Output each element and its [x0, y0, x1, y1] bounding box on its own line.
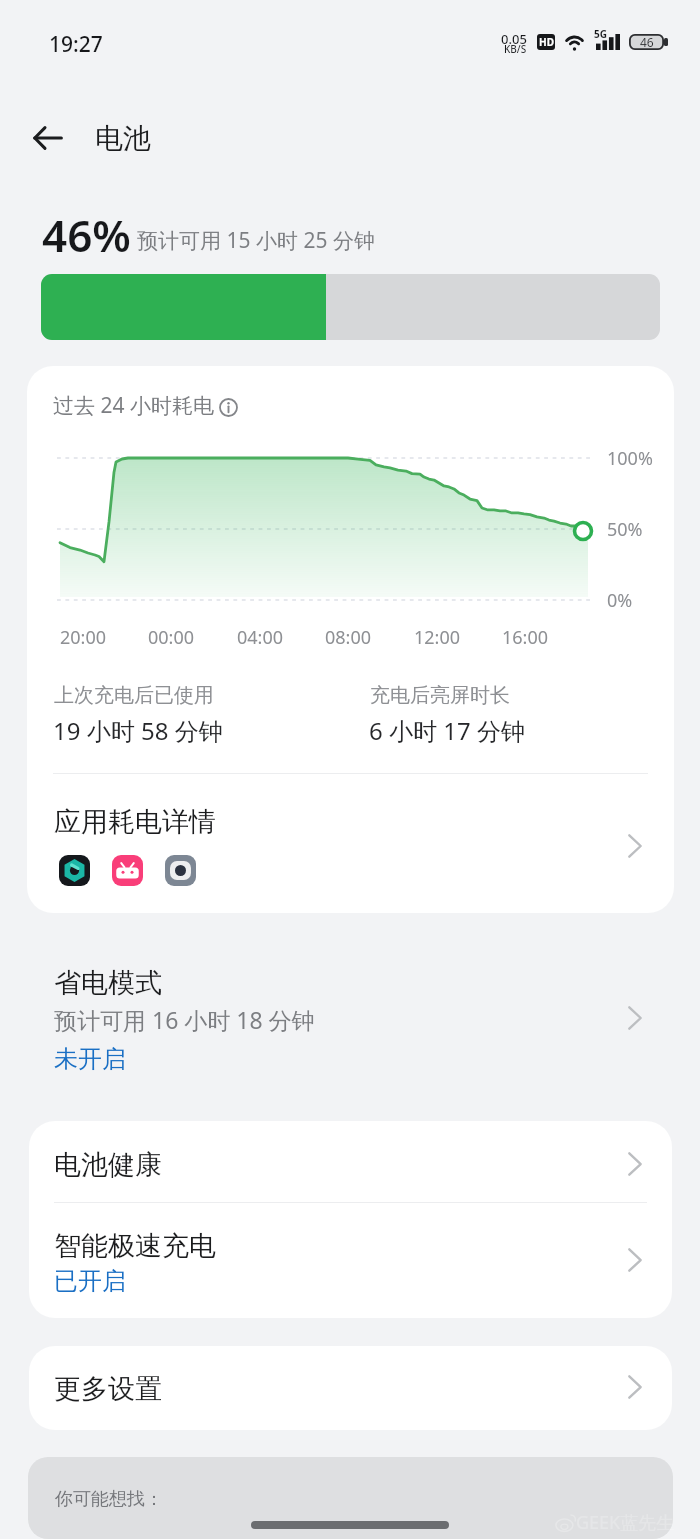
staticText: 20:00	[60, 625, 107, 650]
staticText: GEEK蓝先生	[576, 1510, 675, 1535]
staticText: 更多设置	[54, 1372, 162, 1406]
button[interactable]: Back	[16, 106, 80, 170]
staticText: 46	[640, 34, 654, 50]
staticText: 充电后亮屏时长	[370, 683, 510, 708]
button[interactable]: 应用耗电详情	[27, 774, 674, 913]
staticText: 16:00	[502, 625, 549, 650]
staticText: 省电模式	[54, 966, 162, 1000]
staticText: 电池	[95, 121, 151, 156]
staticText: 5G	[594, 27, 607, 41]
button[interactable]: 省电模式	[27, 940, 674, 1100]
staticText: 19:27	[49, 30, 103, 59]
staticText: 04:00	[237, 625, 284, 650]
button[interactable]: 智能极速充电	[29, 1203, 672, 1318]
staticText: 电池健康	[54, 1148, 162, 1182]
staticText: 0%	[607, 588, 633, 613]
staticText: 预计可用 16 小时 18 分钟	[54, 1004, 315, 1035]
staticText: 0.05	[501, 30, 527, 48]
staticText: HD	[539, 35, 554, 49]
staticText: 你可能想找：	[55, 1488, 163, 1511]
staticText: 08:00	[325, 625, 372, 650]
staticText: 已开启	[54, 1266, 126, 1296]
button[interactable]: 更多设置	[29, 1346, 672, 1430]
button[interactable]: 电池健康	[29, 1121, 672, 1202]
staticText: 6 小时 17 分钟	[369, 714, 525, 747]
staticText: 预计可用 15 小时 25 分钟	[137, 226, 375, 255]
staticText: 12:00	[414, 625, 461, 650]
staticText: 100%	[607, 446, 653, 471]
staticText: 50%	[607, 517, 643, 542]
staticText: 智能极速充电	[54, 1229, 216, 1263]
staticText: 应用耗电详情	[54, 805, 216, 839]
staticText: 过去 24 小时耗电	[53, 391, 214, 420]
staticText: 未开启	[54, 1044, 126, 1074]
staticText: KB/S	[504, 42, 527, 56]
staticText: 00:00	[148, 625, 195, 650]
staticText: 上次充电后已使用	[54, 683, 214, 708]
staticText: 19 小时 58 分钟	[53, 714, 223, 747]
staticText: 46%	[42, 205, 131, 265]
